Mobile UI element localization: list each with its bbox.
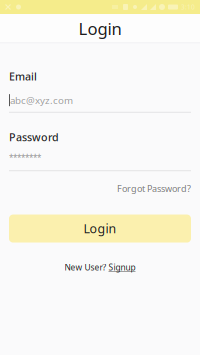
- button[interactable]: Forgot Password?: [117, 182, 191, 194]
- staticText: Login: [83, 220, 116, 237]
- button[interactable]: Signup: [108, 262, 135, 273]
- staticText: abc@xyz.com: [10, 93, 73, 107]
- button[interactable]: Login: [9, 215, 191, 243]
- button[interactable]: ********: [9, 152, 191, 171]
- staticText: Signup: [108, 262, 135, 273]
- staticText: Login: [78, 17, 121, 40]
- staticText: New User?: [64, 262, 108, 273]
- staticText: Password: [9, 130, 59, 144]
- staticText: Forgot Password?: [117, 182, 191, 194]
- staticText: ********: [9, 152, 41, 163]
- button[interactable]: abc@xyz.com: [9, 93, 191, 113]
- staticText: 3:10: [181, 2, 195, 12]
- staticText: Email: [9, 69, 37, 83]
